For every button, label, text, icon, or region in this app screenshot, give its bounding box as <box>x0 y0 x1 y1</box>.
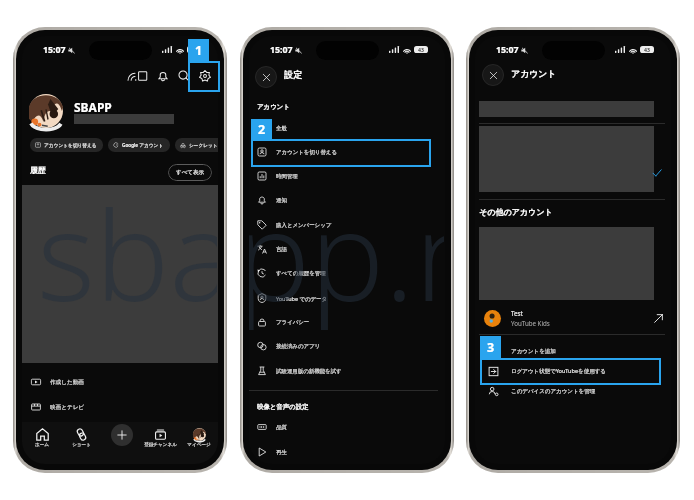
button[interactable]: 試験運用版の新機能を試す <box>249 360 445 382</box>
button[interactable]: Search <box>173 65 194 86</box>
staticText: 設定 <box>284 69 302 80</box>
staticText: プライバシー <box>276 319 310 326</box>
staticText: 15:07 <box>43 44 66 56</box>
staticText: 品質 <box>276 424 287 431</box>
staticText: マイページ <box>187 442 211 448</box>
staticText: Google アカウント <box>122 142 164 148</box>
staticText: ログアウト状態でYouTubeを使用する <box>511 367 606 375</box>
staticText: YouTube Kids <box>511 319 550 327</box>
button[interactable]: ホーム <box>22 424 64 452</box>
staticText: 15:07 <box>496 44 519 56</box>
button[interactable]: Settings <box>194 65 215 86</box>
button[interactable]: 全般 <box>249 117 445 139</box>
staticText: 時間管理 <box>276 173 298 180</box>
button[interactable]: すべて表示 <box>168 164 212 181</box>
staticText: SBAPP <box>74 99 112 115</box>
staticText: YouTube でのデータ <box>276 295 328 302</box>
staticText: 43 <box>644 46 650 53</box>
button[interactable]: このデバイスのアカウントを管理 <box>475 381 671 401</box>
button[interactable]: Close <box>255 66 277 88</box>
staticText: 再生 <box>276 449 287 456</box>
button[interactable]: Google アカウント <box>108 138 170 152</box>
staticText: アカウントを切り替える <box>276 149 337 156</box>
button[interactable]: 作成した動画 <box>22 370 218 394</box>
button[interactable]: プライバシー <box>249 311 445 333</box>
button[interactable]: 通知 <box>249 189 445 211</box>
button[interactable]: 品質 <box>249 416 445 438</box>
staticText: 通知 <box>276 197 287 204</box>
staticText: シークレット モ <box>189 142 218 148</box>
button[interactable]: アカウントを切り替える <box>30 138 103 152</box>
button[interactable]: 購入とメンバーシップ <box>249 214 445 236</box>
button[interactable]: アカウントを追加 <box>475 341 671 361</box>
staticText: 1 <box>195 42 203 59</box>
button[interactable]: アカウントを切り替える <box>249 141 445 163</box>
staticText: 接続済みのアプリ <box>276 343 321 350</box>
button[interactable]: 接続済みのアプリ <box>249 335 445 357</box>
staticText: 43 <box>191 46 197 53</box>
staticText: ショート <box>72 442 91 448</box>
button[interactable]: すべての履歴を管理 <box>249 262 445 284</box>
button[interactable]: 映画とテレビ <box>22 395 218 419</box>
staticText: すべて表示 <box>176 169 204 176</box>
button[interactable]: 登録チャンネル <box>138 424 182 452</box>
button[interactable]: Cast <box>130 65 151 86</box>
staticText: 映画とテレビ <box>50 404 85 411</box>
button[interactable]: Close <box>482 64 504 86</box>
staticText: 全般 <box>276 125 287 132</box>
staticText: 登録チャンネル <box>144 442 177 448</box>
staticText: 映像と音声の設定 <box>257 403 309 411</box>
staticText: 43 <box>418 46 424 53</box>
button[interactable]: シークレット モ <box>175 138 218 152</box>
button[interactable]: 再生 <box>249 441 445 463</box>
staticText: 購入とメンバーシップ <box>276 222 332 229</box>
button[interactable]: ログアウト状態でYouTubeを使用する <box>475 361 671 381</box>
button[interactable]: 時間管理 <box>249 165 445 187</box>
staticText: アカウント <box>257 103 290 111</box>
button[interactable]: Create <box>111 424 133 446</box>
staticText: アカウントを追加 <box>511 348 556 355</box>
staticText: 15:07 <box>270 44 293 56</box>
button[interactable]: Notifications <box>152 65 173 86</box>
button[interactable]: 言語 <box>249 238 445 260</box>
staticText: このデバイスのアカウントを管理 <box>511 388 596 395</box>
button[interactable]: Test <box>475 304 671 332</box>
staticText: Test <box>511 309 523 317</box>
staticText: sbapp.net <box>37 168 217 337</box>
staticText: 言語 <box>276 246 287 253</box>
staticText: 2 <box>258 121 266 138</box>
staticText: アカウントを切り替える <box>44 142 97 148</box>
staticText: 履歴 <box>30 165 46 175</box>
button[interactable]: YouTube でのデータ <box>249 287 445 309</box>
staticText: 作成した動画 <box>50 379 84 386</box>
button[interactable]: ショート <box>59 424 103 452</box>
staticText: すべての履歴を管理 <box>276 270 326 277</box>
staticText: ホーム <box>35 442 49 448</box>
staticText: アカウント <box>511 69 557 80</box>
staticText: その他のアカウント <box>479 207 553 217</box>
staticText: sbapp.net <box>249 168 444 337</box>
button[interactable]: マイページ <box>177 424 218 452</box>
staticText: 3 <box>487 339 495 356</box>
staticText: 試験運用版の新機能を試す <box>276 368 342 375</box>
